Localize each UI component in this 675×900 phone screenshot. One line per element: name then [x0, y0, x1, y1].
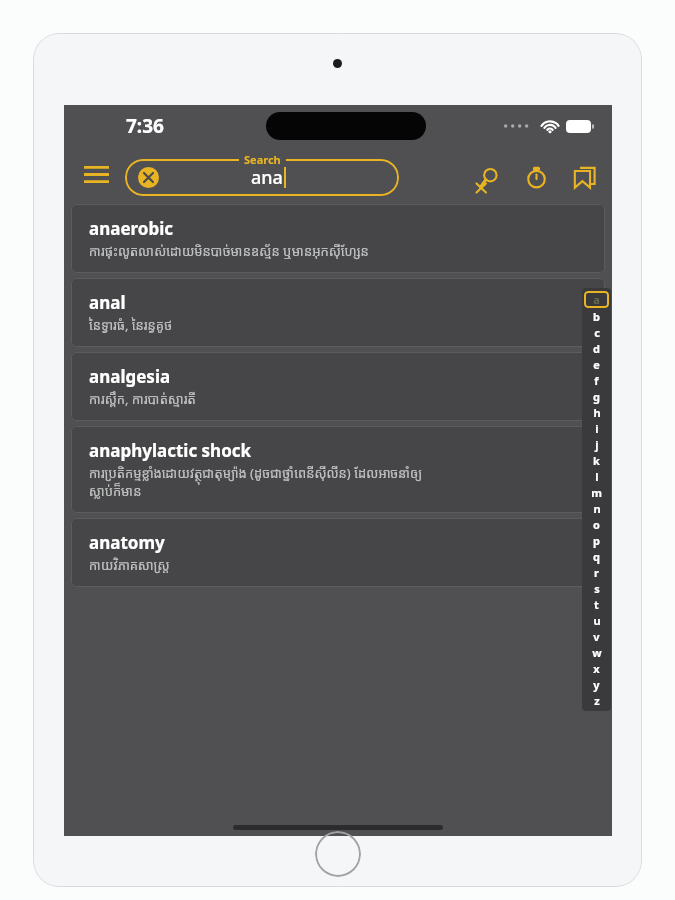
- staticText: anal: [89, 291, 126, 314]
- button[interactable]: d: [584, 340, 609, 356]
- staticText: a: [593, 292, 600, 307]
- button[interactable]: r: [584, 564, 609, 580]
- button[interactable]: anaerobic: [71, 204, 605, 273]
- staticText: analgesia: [89, 365, 171, 388]
- button[interactable]: anaphylactic shock: [71, 426, 605, 513]
- staticText: ការប្រតិកម្មខ្លាំងដោយវត្ថុជាតុម្យ៉ាង (ដូ…: [89, 464, 422, 482]
- staticText: e: [593, 357, 600, 372]
- button[interactable]: k: [584, 452, 609, 468]
- button[interactable]: t: [584, 596, 609, 612]
- staticText: g: [593, 389, 600, 404]
- button[interactable]: c: [584, 324, 609, 340]
- button[interactable]: p: [584, 532, 609, 548]
- staticText: q: [593, 549, 600, 564]
- button[interactable]: h: [584, 404, 609, 420]
- button[interactable]: x: [584, 660, 609, 676]
- button[interactable]: y: [584, 676, 609, 692]
- staticText: d: [593, 341, 600, 356]
- staticText: o: [593, 517, 600, 532]
- button[interactable]: Bookmarks: [566, 159, 602, 195]
- staticText: i: [595, 421, 599, 436]
- button[interactable]: n: [584, 500, 609, 516]
- staticText: 7:36: [126, 113, 164, 139]
- button[interactable]: Clear search: [138, 167, 159, 188]
- staticText: t: [594, 597, 599, 612]
- staticText: កាយវិភាគសាស្ត្រ: [89, 556, 170, 574]
- button[interactable]: Search word: [470, 159, 506, 195]
- button[interactable]: Home: [315, 831, 361, 877]
- staticText: u: [593, 613, 601, 628]
- staticText: l: [595, 469, 599, 484]
- button[interactable]: u: [584, 612, 609, 628]
- staticText: anaerobic: [89, 217, 174, 240]
- staticText: Search: [244, 152, 281, 167]
- button[interactable]: m: [584, 484, 609, 500]
- staticText: នៃទ្វារធំ, នៃរន្ធគូថ: [89, 316, 173, 334]
- staticText: ការស្ពឹក, ការបាត់ស្មារតី: [89, 390, 196, 408]
- button[interactable]: v: [584, 628, 609, 644]
- staticText: m: [591, 485, 602, 500]
- button[interactable]: b: [584, 308, 609, 324]
- staticText: p: [593, 533, 600, 548]
- button[interactable]: History: [518, 159, 554, 195]
- staticText: c: [594, 325, 600, 340]
- staticText: v: [593, 629, 600, 644]
- button[interactable]: o: [584, 516, 609, 532]
- staticText: ស្លាប់ក៏មាន: [89, 482, 142, 500]
- button[interactable]: l: [584, 468, 609, 484]
- staticText: f: [594, 373, 599, 388]
- staticText: z: [594, 693, 600, 708]
- button[interactable]: anatomy: [71, 518, 605, 587]
- button[interactable]: w: [584, 644, 609, 660]
- staticText: h: [593, 405, 601, 420]
- staticText: n: [593, 501, 601, 516]
- button[interactable]: z: [584, 692, 609, 708]
- staticText: b: [593, 309, 600, 324]
- button[interactable]: f: [584, 372, 609, 388]
- button[interactable]: s: [584, 580, 609, 596]
- staticText: k: [593, 453, 600, 468]
- button[interactable]: a: [584, 291, 609, 308]
- staticText: ana: [251, 165, 283, 190]
- staticText: ការផុះលូតលាស់ដោយមិនបាច់មានឧស្ម័ន ឬមានអុក…: [89, 242, 369, 260]
- staticText: anatomy: [89, 531, 165, 554]
- button[interactable]: e: [584, 356, 609, 372]
- button[interactable]: i: [584, 420, 609, 436]
- button[interactable]: q: [584, 548, 609, 564]
- staticText: w: [592, 645, 602, 660]
- staticText: r: [594, 565, 599, 580]
- staticText: anaphylactic shock: [89, 439, 252, 462]
- button[interactable]: analgesia: [71, 352, 605, 421]
- staticText: s: [594, 581, 600, 596]
- button[interactable]: anal: [71, 278, 605, 347]
- staticText: y: [593, 677, 600, 692]
- button[interactable]: [125, 159, 399, 196]
- button[interactable]: Menu: [76, 154, 116, 194]
- button[interactable]: j: [584, 436, 609, 452]
- staticText: x: [593, 661, 600, 676]
- staticText: j: [595, 437, 599, 452]
- button[interactable]: g: [584, 388, 609, 404]
